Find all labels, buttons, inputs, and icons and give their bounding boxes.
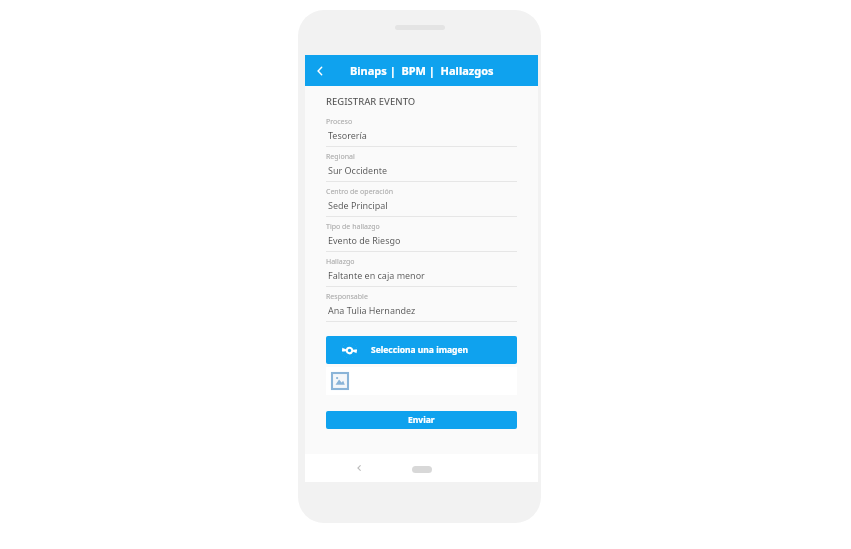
button[interactable]: Selecciona una imagen bbox=[326, 336, 517, 364]
button[interactable]: Regional bbox=[326, 152, 517, 187]
button[interactable]: Home bbox=[412, 466, 432, 473]
staticText: Enviar bbox=[408, 414, 435, 426]
staticText: Ana Tulia Hernandez bbox=[328, 304, 416, 316]
staticText: Selecciona una imagen bbox=[371, 344, 469, 356]
button[interactable]: Responsable bbox=[326, 292, 517, 327]
staticText: Regional bbox=[326, 152, 355, 162]
button[interactable]: Proceso bbox=[326, 117, 517, 152]
button[interactable]: Centro de operación bbox=[326, 187, 517, 222]
button[interactable]: Back bbox=[305, 56, 335, 86]
staticText: Hallazgo bbox=[326, 257, 355, 267]
button[interactable]: Enviar bbox=[326, 411, 517, 429]
other: Image placeholder bbox=[332, 373, 348, 389]
staticText: Tipo de hallazgo bbox=[326, 222, 380, 232]
staticText: Tesorería bbox=[328, 129, 367, 141]
button[interactable]: Back bbox=[347, 456, 371, 480]
staticText: Binaps | BPM | Hallazgos bbox=[350, 63, 494, 78]
staticText: Sede Principal bbox=[328, 199, 388, 211]
button[interactable]: Hallazgo bbox=[326, 257, 517, 292]
staticText: Evento de Riesgo bbox=[328, 234, 401, 246]
button[interactable]: Tipo de hallazgo bbox=[326, 222, 517, 257]
staticText: Proceso bbox=[326, 117, 353, 127]
staticText: Centro de operación bbox=[326, 187, 393, 197]
staticText: Sur Occidente bbox=[328, 164, 388, 176]
staticText: REGISTRAR EVENTO bbox=[326, 95, 416, 108]
staticText: Faltante en caja menor bbox=[328, 269, 425, 281]
staticText: Responsable bbox=[326, 292, 368, 302]
